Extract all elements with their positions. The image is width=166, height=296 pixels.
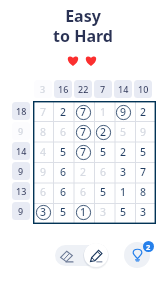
staticText: 6 (60, 125, 67, 139)
button[interactable]: 6 (53, 121, 73, 141)
button[interactable]: 18 (12, 102, 30, 120)
button[interactable]: 10 (134, 80, 152, 98)
staticText: 2 (100, 125, 107, 139)
staticText: 3 (100, 205, 107, 219)
button[interactable]: 9 (113, 101, 133, 121)
button[interactable]: 13 (12, 182, 30, 200)
button[interactable]: 6 (93, 161, 113, 181)
staticText: 5 (140, 145, 147, 159)
staticText: 16 (58, 83, 69, 95)
staticText: 7 (80, 125, 87, 139)
button[interactable]: 5 (113, 201, 133, 221)
button[interactable]: 2 (133, 101, 153, 121)
staticText: 6 (60, 185, 67, 199)
staticText: 2 (80, 165, 87, 179)
button[interactable]: 9 (33, 161, 53, 181)
button[interactable]: 2 (113, 141, 133, 161)
button[interactable]: 16 (54, 80, 72, 98)
staticText: 7 (100, 83, 106, 95)
staticText: 6 (60, 165, 67, 179)
staticText: 3 (120, 165, 127, 179)
button[interactable]: 14 (12, 142, 30, 160)
staticText: Easy to Hard (0, 5, 166, 46)
button[interactable]: 7 (33, 101, 53, 121)
button[interactable]: 3 (33, 201, 53, 221)
staticText: 2 (120, 145, 127, 159)
staticText: 7 (80, 145, 87, 159)
staticText: 6 (40, 185, 47, 199)
staticText: 5 (120, 205, 127, 219)
button[interactable]: 2 (93, 121, 113, 141)
button[interactable]: 5 (133, 141, 153, 161)
button[interactable]: 3 (34, 80, 52, 98)
staticText: 6 (100, 165, 107, 179)
staticText: 10 (138, 83, 149, 95)
button[interactable]: 5 (53, 201, 73, 221)
staticText: 5 (120, 125, 127, 139)
button[interactable]: 7 (94, 80, 112, 98)
staticText: 13 (16, 185, 27, 197)
button[interactable]: 4 (33, 141, 53, 161)
button[interactable]: 7 (73, 121, 93, 141)
button[interactable]: 6 (53, 181, 73, 201)
staticText: 9 (140, 125, 147, 139)
staticText: 3 (140, 205, 147, 219)
staticText: 9 (18, 165, 24, 177)
button[interactable]: Hint (124, 242, 150, 268)
staticText: 7 (40, 105, 47, 119)
staticText: 2 (140, 105, 147, 119)
staticText: 8 (140, 185, 147, 199)
staticText: 2 (60, 105, 67, 119)
button[interactable]: 6 (33, 181, 53, 201)
staticText: 4 (40, 145, 47, 159)
button[interactable]: 8 (133, 181, 153, 201)
staticText: 9 (18, 125, 24, 137)
button[interactable]: 5 (93, 141, 113, 161)
button[interactable]: 1 (113, 181, 133, 201)
button[interactable]: 6 (73, 181, 93, 201)
staticText: 5 (100, 185, 107, 199)
staticText: 9 (120, 105, 127, 119)
button[interactable]: 6 (53, 161, 73, 181)
staticText: 1 (120, 185, 127, 199)
button[interactable]: 3 (133, 201, 153, 221)
button[interactable]: 7 (73, 141, 93, 161)
button[interactable]: 7 (133, 161, 153, 181)
staticText: 7 (140, 165, 147, 179)
staticText: 5 (100, 145, 107, 159)
button[interactable]: 14 (114, 80, 132, 98)
button[interactable]: 8 (33, 121, 53, 141)
button[interactable]: 9 (12, 162, 30, 180)
staticText: 5 (60, 145, 67, 159)
staticText: 1 (100, 105, 107, 119)
staticText: 22 (78, 83, 89, 95)
button[interactable]: 22 (74, 80, 92, 98)
button[interactable]: 9 (12, 202, 30, 220)
staticText: 3 (40, 205, 47, 219)
button[interactable]: 1 (93, 101, 113, 121)
staticText: 9 (18, 205, 24, 217)
button[interactable]: 2 (73, 161, 93, 181)
staticText: 2 (146, 242, 151, 252)
button[interactable]: 1 (73, 201, 93, 221)
button[interactable]: 5 (113, 121, 133, 141)
button[interactable]: 3 (113, 161, 133, 181)
button[interactable]: Eraser (55, 245, 78, 266)
staticText: 9 (40, 165, 47, 179)
staticText: 14 (118, 83, 129, 95)
button[interactable]: 9 (133, 121, 153, 141)
staticText: 7 (80, 105, 87, 119)
staticText: 18 (16, 105, 27, 117)
button[interactable]: 5 (93, 181, 113, 201)
button[interactable]: 9 (12, 122, 30, 140)
button[interactable]: Pencil (84, 243, 108, 267)
staticText: 8 (40, 125, 47, 139)
button[interactable]: 5 (53, 141, 73, 161)
staticText: 3 (40, 83, 46, 95)
staticText: 6 (80, 185, 87, 199)
staticText: 5 (60, 205, 67, 219)
button[interactable]: 2 (53, 101, 73, 121)
button[interactable]: 3 (93, 201, 113, 221)
staticText: 14 (16, 145, 27, 157)
button[interactable]: 7 (73, 101, 93, 121)
